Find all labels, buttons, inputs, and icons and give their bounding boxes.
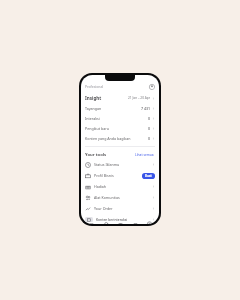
staticText: Buat: [145, 174, 152, 178]
button[interactable]: Your Order: [81, 203, 159, 214]
staticText: Interaksi: [85, 116, 100, 121]
button[interactable]: Pengikut baru: [81, 123, 159, 133]
button[interactable]: Buat: [142, 173, 155, 179]
staticText: 7 431: [141, 106, 151, 111]
staticText: Insight: [85, 95, 102, 101]
staticText: Pengikut baru: [85, 126, 109, 131]
staticText: Profesional: [85, 84, 104, 89]
button[interactable]: Interaksi: [81, 113, 159, 123]
staticText: Profil Bisnis: [94, 173, 114, 178]
staticText: Konten yang Anda bagikan: [85, 136, 131, 141]
button[interactable]: Tayangan: [81, 103, 159, 113]
staticText: 0: [148, 136, 151, 141]
button[interactable]: Konten berinteraksi: [81, 215, 159, 224]
button[interactable]: Lihat semua: [134, 152, 155, 158]
button[interactable]: Status Iklanmu: [81, 159, 159, 170]
staticText: Lihat semua: [135, 153, 154, 157]
staticText: Alat Komunitas: [94, 195, 120, 200]
staticText: Konten berinteraksi: [96, 217, 128, 221]
staticText: Hadiah: [94, 184, 107, 189]
button[interactable]: Profil Bisnis: [81, 170, 159, 181]
staticText: 0: [148, 116, 151, 121]
button[interactable]: Alat Komunitas: [81, 192, 159, 203]
staticText: Your tools: [85, 152, 107, 158]
button[interactable]: Hadiah: [81, 181, 159, 192]
staticText: 0: [148, 126, 151, 131]
button[interactable]: Konten yang Anda bagikan: [81, 133, 159, 143]
staticText: Status Iklanmu: [94, 162, 120, 167]
button[interactable]: Insight: [81, 93, 159, 103]
button[interactable]: Account: [148, 83, 155, 90]
staticText: Your Order: [94, 206, 113, 211]
staticText: 21 Jan – 20 Apr: [128, 96, 151, 100]
staticText: Tayangan: [85, 106, 102, 111]
